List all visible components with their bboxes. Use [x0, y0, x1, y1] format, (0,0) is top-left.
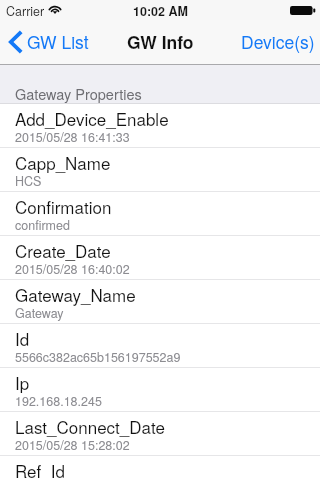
- staticText: 2015/05/28 16:41:33: [15, 128, 130, 146]
- staticText: Device(s): [241, 29, 315, 54]
- staticText: GW List: [27, 29, 89, 54]
- staticText: Id: [15, 326, 30, 350]
- button[interactable]: Ref_Id: [0, 456, 320, 480]
- staticText: Ref_Id: [15, 458, 65, 480]
- staticText: Gateway: [15, 304, 64, 322]
- staticText: GW Info: [127, 29, 194, 54]
- staticText: HCS: [15, 172, 42, 190]
- staticText: Add_Device_Enable: [15, 106, 169, 130]
- staticText: Ip: [15, 370, 30, 394]
- staticText: Gateway_Name: [15, 282, 136, 306]
- button[interactable]: Id: [0, 324, 320, 368]
- staticText: 10:02 AM: [133, 2, 188, 20]
- staticText: Capp_Name: [15, 150, 111, 174]
- button[interactable]: Add_Device_Enable: [0, 104, 320, 148]
- button[interactable]: Last_Connect_Date: [0, 412, 320, 456]
- staticText: confirmed: [15, 216, 70, 234]
- staticText: Gateway Properties: [15, 83, 142, 104]
- button[interactable]: Create_Date: [0, 236, 320, 280]
- staticText: 2015/05/28 16:40:02: [15, 260, 130, 278]
- staticText: Carrier: [6, 2, 45, 20]
- staticText: 192.168.18.245: [15, 392, 102, 410]
- staticText: Last_Connect_Date: [15, 414, 165, 438]
- other: Back to GW List: [9, 30, 23, 54]
- button[interactable]: Ip: [0, 368, 320, 412]
- button[interactable]: Capp_Name: [0, 148, 320, 192]
- staticText: Confirmation: [15, 194, 112, 218]
- button[interactable]: Confirmation: [0, 192, 320, 236]
- button[interactable]: Gateway_Name: [0, 280, 320, 324]
- staticText: 5566c382ac65b156197552a9: [15, 348, 181, 366]
- button[interactable]: Back to GW List: [0, 20, 99, 63]
- staticText: Create_Date: [15, 238, 111, 262]
- button[interactable]: Device(s): [231, 20, 320, 63]
- staticText: 2015/05/28 15:28:02: [15, 436, 130, 454]
